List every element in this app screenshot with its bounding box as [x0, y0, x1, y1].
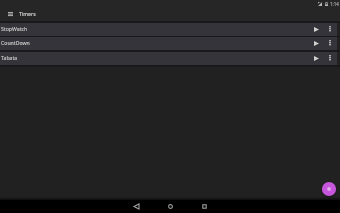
staticText: Tabata: [1, 54, 18, 61]
button[interactable]: StopWatch: [0, 23, 337, 36]
button[interactable]: Open navigation menu: [3, 7, 17, 21]
button[interactable]: Tabata: [0, 52, 337, 65]
button[interactable]: Add timer: [320, 180, 338, 198]
staticText: StopWatch: [1, 25, 28, 32]
button[interactable]: More options for Tabata: [323, 52, 336, 65]
button[interactable]: Start Tabata: [311, 52, 324, 65]
button[interactable]: Home: [163, 200, 177, 213]
button[interactable]: Recent apps: [197, 200, 211, 213]
button[interactable]: Start StopWatch: [311, 23, 324, 36]
button[interactable]: CountDown: [0, 37, 337, 50]
staticText: CountDown: [1, 39, 30, 46]
button[interactable]: More options for StopWatch: [323, 23, 336, 36]
button[interactable]: Start CountDown: [311, 37, 324, 50]
staticText: 1:14: [330, 1, 339, 7]
staticText: Timers: [19, 11, 36, 18]
button[interactable]: More options for CountDown: [323, 37, 336, 50]
button[interactable]: Back: [129, 200, 143, 213]
